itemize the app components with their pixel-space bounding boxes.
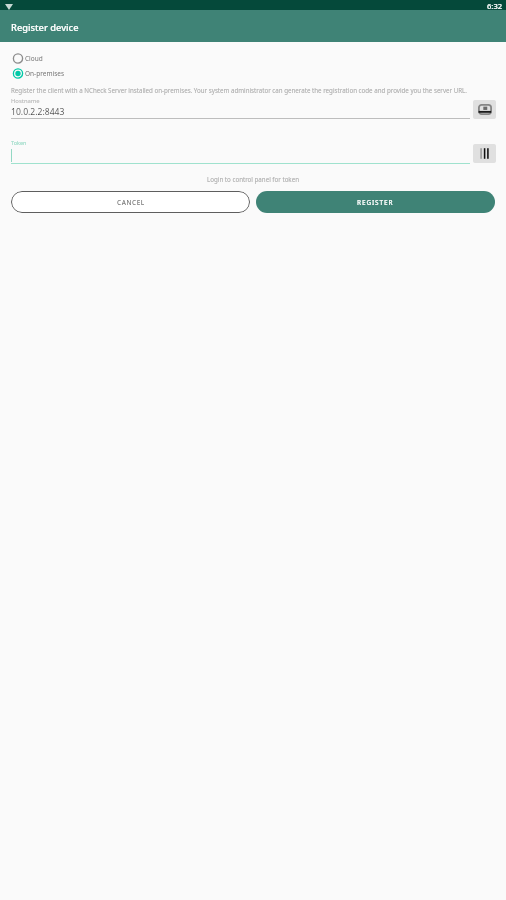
staticText: REGISTER: [357, 198, 394, 207]
button[interactable]: On-premises: [10, 67, 65, 80]
staticText: Hostname: [11, 97, 40, 105]
staticText: CANCEL: [117, 198, 145, 207]
button[interactable]: Scan QR code: [473, 100, 496, 119]
staticText: 6:32: [487, 1, 503, 11]
button[interactable]: REGISTER: [256, 191, 495, 213]
button[interactable]: Login to control panel for token: [0, 174, 506, 184]
staticText: Token: [11, 139, 27, 146]
staticText: Register device: [11, 21, 79, 34]
staticText: On-premises: [25, 69, 65, 78]
staticText: 10.0.2.2:8443: [11, 106, 65, 118]
other: Notification: [5, 4, 13, 10]
button[interactable]: CANCEL: [11, 191, 250, 213]
staticText: Register the client with a NCheck Server…: [11, 86, 506, 94]
staticText: Cloud: [25, 54, 43, 63]
button[interactable]: Cloud: [10, 52, 43, 65]
button[interactable]: Scan barcode: [473, 144, 496, 163]
